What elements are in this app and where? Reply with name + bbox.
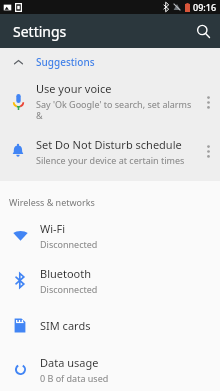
button[interactable]: Bluetooth — [0, 258, 220, 303]
staticText: Bluetooth — [40, 266, 92, 281]
button[interactable]: Set Do Not Disturb schedule — [0, 127, 220, 175]
staticText: Suggestions — [36, 55, 95, 69]
staticText: Wireless & networks — [9, 196, 95, 208]
button[interactable]: Use your voice — [0, 76, 220, 127]
staticText: 0 B of data used — [40, 372, 109, 384]
staticText: Data usage — [40, 355, 99, 370]
button[interactable]: SIM cards — [0, 303, 220, 348]
staticText: Set Do Not Disturb schedule — [36, 137, 182, 152]
staticText: Disconnected — [40, 283, 98, 295]
staticText: 09:16 — [193, 1, 217, 13]
staticText: Say 'Ok Google' to search, set alarms & … — [36, 98, 196, 122]
button[interactable]: Search — [186, 14, 220, 48]
staticText: Disconnected — [40, 238, 98, 250]
button[interactable]: More options — [196, 132, 220, 170]
button[interactable]: More options — [196, 83, 220, 121]
button[interactable]: Data usage — [0, 348, 220, 391]
button[interactable]: Wi-Fi — [0, 213, 220, 258]
staticText: SIM cards — [40, 318, 91, 333]
staticText: Settings — [13, 22, 67, 41]
button[interactable]: Suggestions — [0, 48, 220, 76]
staticText: Wi-Fi — [40, 221, 66, 236]
staticText: Use your voice — [36, 81, 112, 96]
staticText: Silence your device at certain times — [36, 154, 185, 166]
